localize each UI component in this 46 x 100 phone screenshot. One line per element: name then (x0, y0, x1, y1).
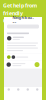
staticText: Get help from (3, 2, 37, 9)
staticText: Neighbours (12, 15, 33, 25)
staticText: friendly neighbours (3, 10, 31, 24)
